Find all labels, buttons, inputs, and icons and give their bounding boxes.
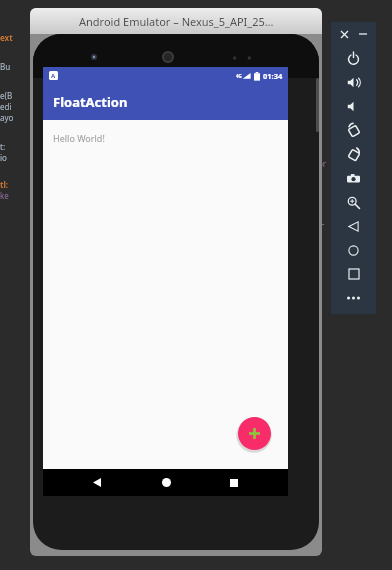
- staticText: or: [318, 158, 327, 169]
- button[interactable]: Power: [331, 46, 376, 70]
- staticText: .L: [318, 216, 325, 227]
- staticText: 4G: [236, 73, 242, 79]
- staticText: 01:34: [263, 71, 283, 81]
- staticText: ke: [0, 190, 9, 201]
- button[interactable]: Home: [151, 469, 181, 496]
- button[interactable]: More: [331, 286, 376, 310]
- button[interactable]: Rotate left: [331, 118, 376, 142]
- button[interactable]: Zoom: [331, 190, 376, 214]
- button[interactable]: Back: [82, 469, 112, 496]
- button[interactable]: Close: [337, 27, 351, 41]
- staticText: edi: [0, 101, 12, 112]
- button[interactable]: Minimize: [356, 27, 370, 41]
- button[interactable]: Home: [331, 238, 376, 262]
- button[interactable]: Volume down: [331, 94, 376, 118]
- staticText: FloatAction: [53, 93, 128, 111]
- staticText: e(B: [0, 90, 13, 101]
- staticText: A: [51, 72, 56, 80]
- button[interactable]: Add: [238, 417, 271, 450]
- button[interactable]: Screenshot: [331, 166, 376, 190]
- button[interactable]: Recents: [219, 469, 249, 496]
- button[interactable]: Volume up: [331, 70, 376, 94]
- staticText: t:: [0, 141, 6, 152]
- button[interactable]: Overview: [331, 262, 376, 286]
- staticText: Bu: [0, 61, 11, 72]
- staticText: ext: [0, 32, 13, 43]
- button[interactable]: Back: [331, 214, 376, 238]
- staticText: tl:: [0, 179, 9, 190]
- button[interactable]: Rotate right: [331, 142, 376, 166]
- staticText: Android Emulator – Nexus_5_API_25…: [79, 14, 274, 29]
- staticText: Hello World!: [53, 132, 105, 144]
- staticText: io: [0, 152, 7, 163]
- staticText: ayo: [0, 112, 14, 123]
